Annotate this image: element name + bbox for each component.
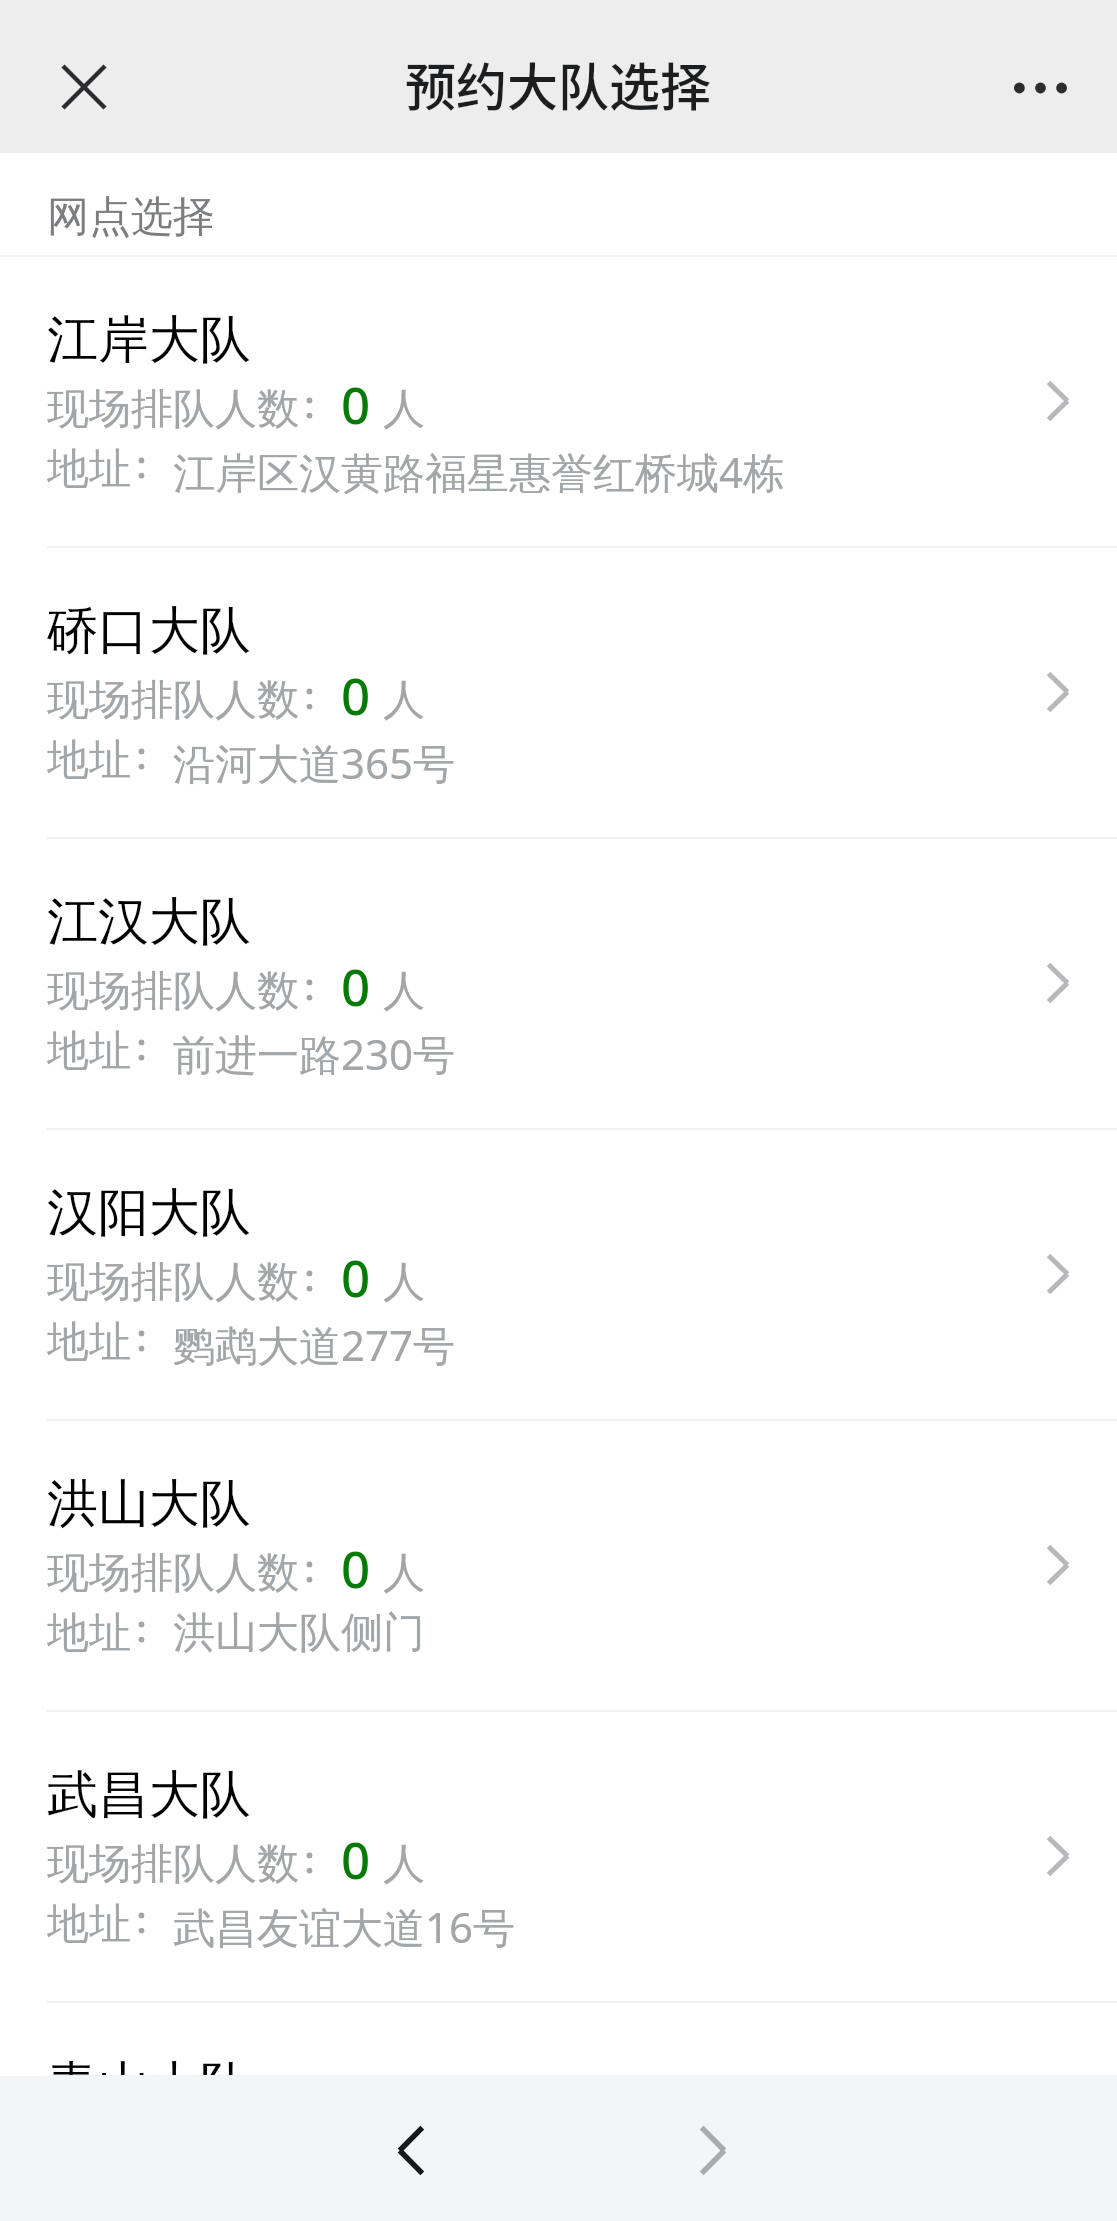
staticText: 人: [383, 383, 425, 436]
staticText: 0: [341, 1824, 371, 1893]
staticText: 地址: [47, 1025, 131, 1078]
staticText: 江汉大队: [47, 890, 251, 954]
staticText: 现场排队人数: [47, 1547, 299, 1600]
staticText: 现场排队人数: [47, 1838, 299, 1891]
staticText: 武昌友谊大道16号: [173, 1898, 516, 1955]
button[interactable]: 武昌大队: [0, 1711, 1117, 2002]
staticText: 人: [383, 1547, 425, 1600]
staticText: 0: [341, 951, 371, 1020]
staticText: 0: [341, 1533, 371, 1602]
button[interactable]: 江汉大队: [0, 838, 1117, 1129]
staticText: 预约大队选择: [405, 47, 712, 121]
staticText: 洪山大队侧门: [173, 1607, 425, 1660]
button[interactable]: 洪山大队: [0, 1420, 1117, 1711]
staticText: 0: [341, 660, 371, 729]
staticText: 网点选择: [47, 191, 215, 244]
button[interactable]: 汉阳大队: [0, 1129, 1117, 1420]
button[interactable]: Close: [36, 39, 132, 135]
staticText: 现场排队人数: [47, 674, 299, 727]
staticText: 江岸大队: [47, 308, 251, 372]
staticText: 硚口大队: [47, 599, 251, 663]
staticText: 地址: [47, 734, 131, 787]
staticText: 鹦鹉大道277号: [173, 1316, 456, 1373]
staticText: 0: [341, 1242, 371, 1311]
staticText: 现场排队人数: [47, 383, 299, 436]
button[interactable]: 硚口大队: [0, 547, 1117, 838]
staticText: 人: [383, 965, 425, 1018]
button[interactable]: 江岸大队: [0, 256, 1117, 547]
staticText: 人: [383, 1256, 425, 1309]
button[interactable]: 青山大队: [0, 2002, 1117, 2076]
staticText: 地址: [47, 1607, 131, 1660]
staticText: 青山大队: [47, 2054, 251, 2076]
staticText: 地址: [47, 1316, 131, 1369]
staticText: 江岸区汉黄路福星惠誉红桥城4栋: [173, 443, 786, 500]
staticText: 洪山大队: [47, 1472, 251, 1536]
staticText: 武昌大队: [47, 1763, 251, 1827]
button[interactable]: More options: [995, 40, 1085, 136]
staticText: 人: [383, 1838, 425, 1891]
staticText: 地址: [47, 443, 131, 496]
staticText: 沿河大道365号: [173, 734, 456, 791]
button[interactable]: Back: [356, 2095, 466, 2205]
staticText: 0: [341, 369, 371, 438]
staticText: 汉阳大队: [47, 1181, 251, 1245]
staticText: 前进一路230号: [173, 1025, 456, 1082]
staticText: 现场排队人数: [47, 965, 299, 1018]
staticText: 地址: [47, 1898, 131, 1951]
button[interactable]: Forward: [658, 2095, 768, 2205]
staticText: 现场排队人数: [47, 1256, 299, 1309]
staticText: 人: [383, 674, 425, 727]
